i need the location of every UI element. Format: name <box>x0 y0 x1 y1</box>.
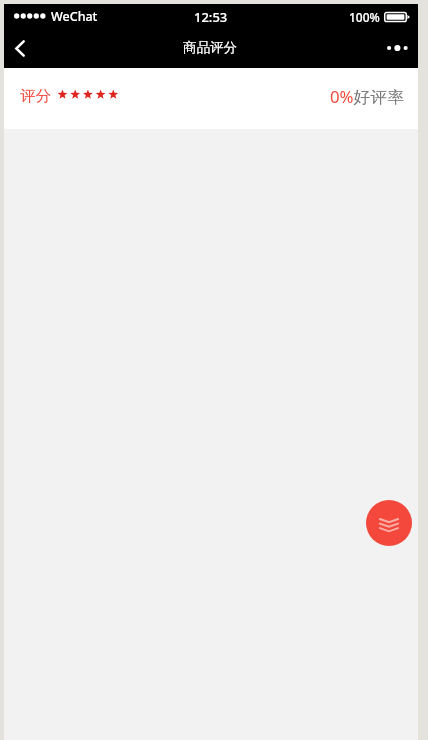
button[interactable]: 评分 <box>4 68 418 129</box>
staticText: 评分 <box>20 86 51 106</box>
button[interactable]: Scroll to bottom <box>366 500 412 546</box>
button[interactable]: Back <box>4 28 44 68</box>
button[interactable]: More options <box>378 28 418 68</box>
staticText: 0%好评率 <box>330 85 404 108</box>
staticText: 12:53 <box>194 8 228 26</box>
staticText: 100% <box>349 9 380 25</box>
staticText: 商品评分 <box>183 39 237 56</box>
staticText: WeChat <box>51 8 98 25</box>
